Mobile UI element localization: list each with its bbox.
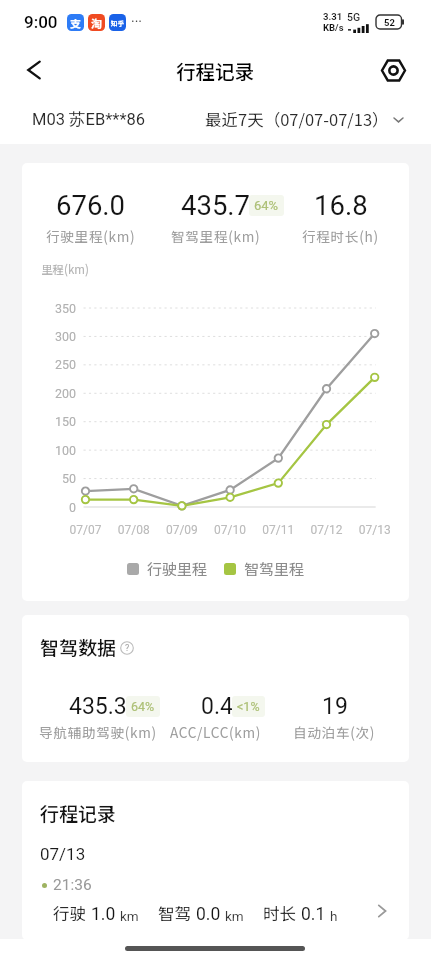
staticText: 52 <box>384 17 395 28</box>
staticText: M03 苏EB***86 <box>32 109 146 130</box>
staticText: 64% <box>254 198 279 213</box>
staticText: km <box>225 908 244 924</box>
staticText: 676.0 <box>56 189 126 221</box>
staticText: 支 <box>70 15 81 31</box>
button[interactable]: 最近7天（07/07-07/13） <box>205 107 406 131</box>
staticText: 导航辅助驾驶(km) <box>39 722 157 742</box>
staticText: 知乎 <box>111 18 124 27</box>
staticText: 行驶里程(km) <box>46 226 136 246</box>
staticText: 0.0 <box>196 904 221 925</box>
staticText: km <box>120 908 139 924</box>
staticText: 1.0 <box>91 904 116 925</box>
staticText: h <box>330 908 338 924</box>
staticText: 21:36 <box>53 876 92 894</box>
staticText: ··· <box>131 14 142 30</box>
staticText: 435.3 <box>69 693 127 720</box>
staticText: 智驾里程(km) <box>171 226 261 246</box>
staticText: 64% <box>131 699 155 714</box>
staticText: 行程时长(h) <box>302 226 379 246</box>
staticText: 智驾 <box>158 901 191 925</box>
staticText: 行驶 <box>53 901 86 925</box>
staticText: 行程记录 <box>40 799 117 827</box>
staticText: 行驶里程 <box>147 558 208 580</box>
staticText: KB/s <box>323 22 344 33</box>
staticText: 435.7 <box>181 189 251 221</box>
staticText: 淘 <box>91 15 102 31</box>
staticText: 16.8 <box>314 189 368 221</box>
staticText: 最近7天（07/07-07/13） <box>205 107 389 131</box>
staticText: 5G <box>347 11 361 23</box>
staticText: 0.4 <box>201 693 233 720</box>
staticText: 3.31 <box>323 11 343 22</box>
staticText: 自动泊车(次) <box>293 722 376 742</box>
staticText: 里程(km) <box>41 261 89 278</box>
button[interactable]: Back <box>13 48 57 92</box>
staticText: 智驾数据 <box>40 633 117 661</box>
button[interactable]: Settings <box>372 49 414 91</box>
staticText: ACC/LCC(km) <box>170 722 262 742</box>
button[interactable]: 21:36 <box>22 872 409 936</box>
staticText: 行程记录 <box>176 56 255 84</box>
staticText: 19 <box>322 693 348 720</box>
staticText: 0.1 <box>301 904 326 925</box>
staticText: 9:00 <box>24 12 58 32</box>
staticText: ? <box>125 643 130 654</box>
staticText: 07/13 <box>40 844 86 864</box>
staticText: 智驾里程 <box>244 558 305 580</box>
staticText: 时长 <box>263 901 296 925</box>
staticText: <1% <box>237 699 260 714</box>
